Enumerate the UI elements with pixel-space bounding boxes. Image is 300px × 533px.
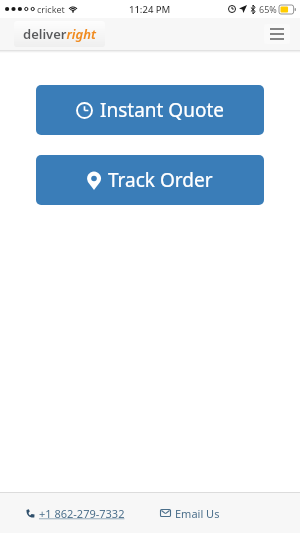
button[interactable]: Track Order [36, 155, 264, 205]
button[interactable]: +1 862-279-7332 [0, 493, 150, 533]
staticText: 65% [259, 3, 277, 15]
button[interactable]: Menu [264, 24, 290, 44]
staticText: Track Order [108, 167, 213, 193]
staticText: deliverright [23, 25, 96, 43]
button[interactable]: deliverright [14, 21, 105, 47]
staticText: 11:24 PM [129, 3, 171, 16]
button[interactable]: Email Us [150, 493, 300, 533]
button[interactable]: Instant Quote [36, 85, 264, 135]
staticText: cricket [37, 3, 65, 15]
staticText: Email Us [175, 506, 220, 521]
staticText: +1 862-279-7332 [39, 506, 125, 521]
staticText: Instant Quote [100, 97, 224, 123]
